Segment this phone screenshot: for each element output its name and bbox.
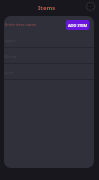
staticText: Apple: [5, 38, 16, 43]
button[interactable]: Settings: [85, 1, 96, 12]
button[interactable]: Enter item name: [4, 16, 65, 32]
staticText: Enter item name: [5, 22, 37, 27]
staticText: Juice: [5, 70, 14, 75]
staticText: ADD ITEM: [68, 23, 88, 28]
button[interactable]: ADD ITEM: [66, 20, 89, 30]
staticText: Bread: [5, 54, 17, 59]
staticText: Items: [38, 4, 56, 12]
